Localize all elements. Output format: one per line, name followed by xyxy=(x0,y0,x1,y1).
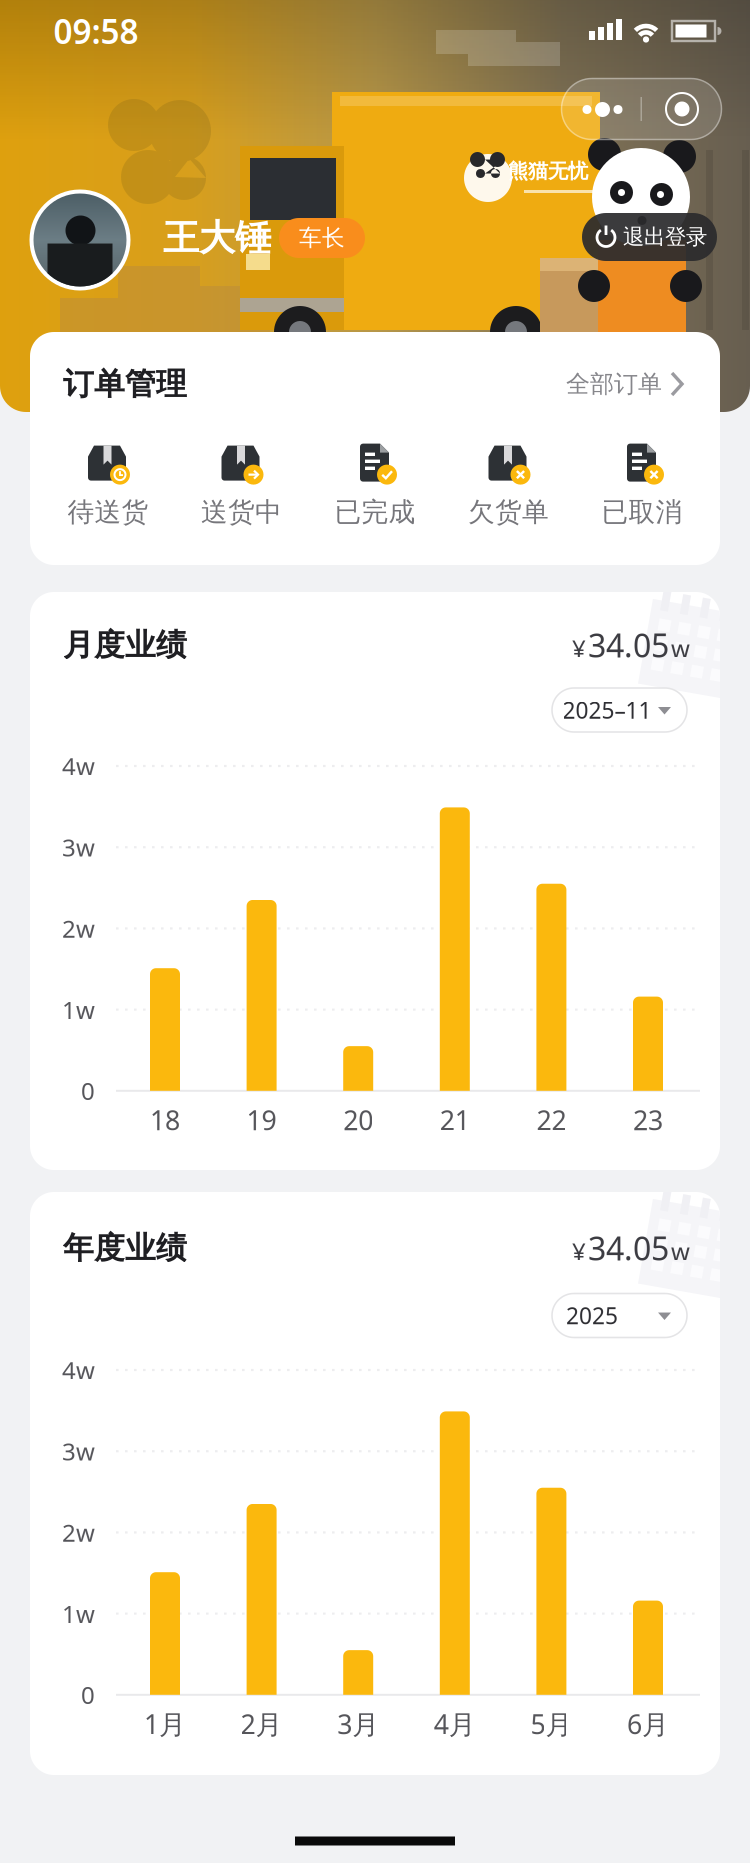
staticText: 4w xyxy=(62,750,95,782)
staticText: 09:58 xyxy=(53,9,138,53)
staticText: 34.05 xyxy=(588,624,669,666)
button[interactable]: 2025 xyxy=(552,1293,687,1337)
staticText: 待送货 xyxy=(67,496,148,528)
staticText: 退出登录 xyxy=(623,224,707,250)
staticText: 年度业绩 xyxy=(63,1229,187,1267)
staticText: ¥ xyxy=(572,632,586,664)
staticText: 0 xyxy=(81,1679,95,1711)
staticText: w xyxy=(671,1235,690,1267)
staticText: 4月 xyxy=(434,1706,476,1741)
staticText: 3w xyxy=(62,831,95,863)
staticText: 19 xyxy=(247,1102,277,1137)
staticText: 王大锤 xyxy=(163,216,271,260)
staticText: 熊猫无忧 xyxy=(508,159,588,183)
button[interactable]: 已完成 xyxy=(308,429,441,539)
staticText: 欠货单 xyxy=(468,496,549,528)
staticText: 0 xyxy=(81,1075,95,1107)
staticText: 18 xyxy=(150,1102,180,1137)
staticText: 23 xyxy=(633,1102,663,1137)
staticText: 月度业绩 xyxy=(63,626,187,664)
staticText: w xyxy=(671,632,690,664)
button[interactable]: 2025–11 xyxy=(552,688,687,732)
staticText: 2w xyxy=(62,1516,95,1548)
staticText: 5月 xyxy=(530,1706,572,1741)
staticText: 2w xyxy=(62,912,95,944)
button[interactable]: 退出登录 xyxy=(582,213,717,261)
staticText: 已完成 xyxy=(334,496,415,528)
staticText: 2025–11 xyxy=(562,695,651,725)
staticText: 20 xyxy=(343,1102,373,1137)
staticText: 22 xyxy=(536,1102,566,1137)
staticText: 1w xyxy=(62,1598,95,1630)
staticText: 4w xyxy=(62,1354,95,1386)
staticText: 1w xyxy=(62,994,95,1026)
staticText: 34.05 xyxy=(588,1227,669,1269)
button[interactable]: 车长 xyxy=(279,218,365,258)
button[interactable]: 已取消 xyxy=(575,429,708,539)
staticText: 6月 xyxy=(627,1706,669,1741)
staticText: 送货中 xyxy=(201,496,282,528)
staticText: 21 xyxy=(440,1102,470,1137)
staticText: 2025 xyxy=(566,1300,618,1330)
button[interactable]: 待送货 xyxy=(41,429,174,539)
button[interactable]: 欠货单 xyxy=(442,429,575,539)
staticText: 2月 xyxy=(241,1706,283,1741)
staticText: 订单管理 xyxy=(63,365,187,403)
staticText: 已取消 xyxy=(601,496,682,528)
button[interactable] xyxy=(561,78,641,140)
staticText: 3w xyxy=(62,1435,95,1467)
staticText: 1月 xyxy=(144,1706,186,1741)
button[interactable]: 送货中 xyxy=(175,429,308,539)
button[interactable]: 全部订单 xyxy=(547,358,697,410)
staticText: ¥ xyxy=(572,1235,586,1267)
staticText: 全部订单 xyxy=(566,369,662,399)
staticText: 3月 xyxy=(337,1706,379,1741)
staticText: 车长 xyxy=(299,224,345,252)
button[interactable] xyxy=(642,78,722,140)
